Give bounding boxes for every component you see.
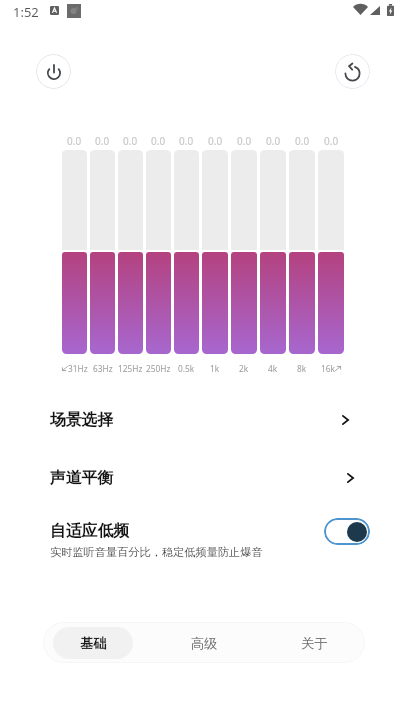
staticText: 1k xyxy=(210,363,220,374)
button[interactable]: 场景选择 xyxy=(0,398,407,442)
staticText: 0.0 xyxy=(67,134,82,148)
staticText: 125Hz xyxy=(118,363,143,374)
button[interactable]: 高级 xyxy=(151,622,257,663)
staticText: 0.0 xyxy=(266,134,281,148)
staticText: 0.0 xyxy=(324,134,339,148)
staticText: 关于 xyxy=(301,635,328,652)
button[interactable]: 声道平衡 xyxy=(0,456,407,500)
button[interactable]: Reset xyxy=(335,54,370,89)
button[interactable]: Power xyxy=(36,54,71,89)
button[interactable]: Adaptive bass toggle xyxy=(324,518,370,545)
button[interactable] xyxy=(289,150,315,354)
button[interactable]: 自适应低频 xyxy=(0,517,407,563)
button[interactable] xyxy=(260,150,286,354)
staticText: 声道平衡 xyxy=(50,468,114,488)
button[interactable] xyxy=(231,150,257,354)
staticText: 2k xyxy=(239,363,249,374)
button[interactable] xyxy=(146,150,171,354)
button[interactable]: 基础 xyxy=(43,622,146,663)
button[interactable] xyxy=(318,150,344,354)
staticText: 0.0 xyxy=(237,134,252,148)
button[interactable] xyxy=(202,150,228,354)
staticText: 0.0 xyxy=(151,134,166,148)
staticText: 0.0 xyxy=(208,134,223,148)
button[interactable] xyxy=(62,150,87,354)
staticText: 1:52 xyxy=(13,3,39,21)
staticText: 63Hz xyxy=(93,363,113,374)
staticText: 高级 xyxy=(191,635,218,652)
staticText: 实时监听音量百分比，稳定低频量防止爆音 xyxy=(50,545,263,559)
staticText: 场景选择 xyxy=(50,410,114,430)
staticText: 自适应低频 xyxy=(50,521,129,541)
staticText: 31Hz xyxy=(68,363,88,374)
staticText: 0.5k xyxy=(178,363,195,374)
staticText: 8k xyxy=(297,363,307,374)
button[interactable] xyxy=(90,150,115,354)
staticText: 0.0 xyxy=(95,134,110,148)
staticText: 250Hz xyxy=(146,363,171,374)
staticText: 基础 xyxy=(80,635,107,652)
staticText: 4k xyxy=(268,363,278,374)
staticText: 16k xyxy=(321,363,335,374)
button[interactable] xyxy=(174,150,199,354)
staticText: 0.0 xyxy=(123,134,138,148)
button[interactable] xyxy=(118,150,143,354)
staticText: 0.0 xyxy=(179,134,194,148)
button[interactable]: 关于 xyxy=(261,622,365,663)
staticText: 0.0 xyxy=(295,134,310,148)
